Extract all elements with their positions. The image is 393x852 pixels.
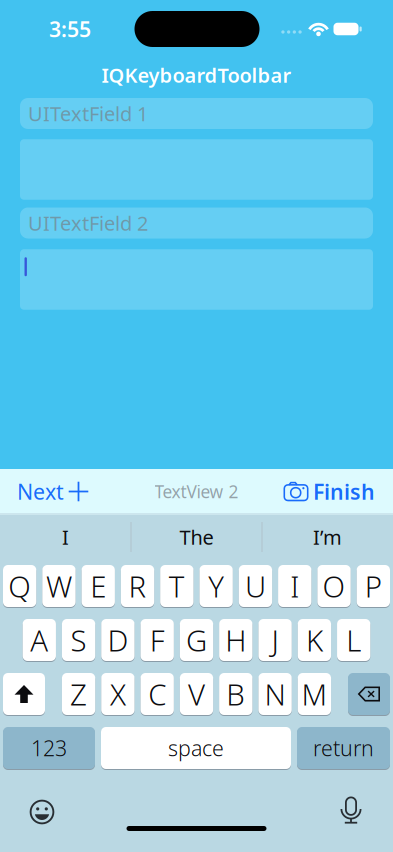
staticText: TextView 2 — [154, 480, 238, 503]
button[interactable]: 123 — [3, 726, 95, 769]
staticText: E — [90, 566, 106, 605]
staticText: S — [71, 620, 87, 659]
staticText: Q — [8, 566, 31, 605]
staticText: UITextField 1 — [28, 100, 148, 127]
button[interactable]: H — [219, 618, 252, 661]
button[interactable]: N — [258, 672, 292, 715]
staticText: Z — [70, 674, 87, 713]
button[interactable]: T — [160, 564, 193, 607]
button[interactable]: Add — [68, 481, 88, 501]
staticText: V — [188, 674, 205, 713]
staticText: F — [150, 620, 165, 659]
button[interactable]: R — [121, 564, 154, 607]
button[interactable]: Finish — [313, 477, 375, 506]
staticText: I — [62, 524, 69, 550]
staticText: 123 — [31, 734, 67, 762]
button[interactable]: K — [298, 618, 331, 661]
staticText: Y — [208, 566, 224, 605]
staticText: IQKeyboardToolbar — [101, 62, 291, 88]
staticText: D — [107, 620, 128, 659]
staticText: M — [301, 674, 327, 713]
staticText: P — [365, 566, 382, 605]
staticText: G — [186, 620, 207, 659]
button[interactable]: Y — [199, 564, 233, 607]
button[interactable]: X — [101, 672, 134, 715]
button[interactable]: UITextField 2 — [20, 207, 373, 238]
staticText: A — [30, 620, 48, 659]
staticText: 3:55 — [49, 15, 91, 43]
button[interactable]: return — [297, 726, 390, 769]
button[interactable]: C — [140, 672, 174, 715]
button[interactable]: D — [101, 618, 134, 661]
button[interactable]: L — [337, 618, 370, 661]
button[interactable]: Shift — [3, 672, 45, 715]
button[interactable]: Camera — [283, 482, 308, 501]
staticText: W — [46, 566, 72, 605]
button[interactable]: space — [101, 726, 291, 769]
button[interactable]: Q — [3, 564, 36, 607]
staticText: return — [313, 734, 374, 762]
button[interactable]: Z — [62, 672, 95, 715]
staticText: X — [110, 674, 126, 713]
staticText: I’m — [313, 524, 342, 550]
staticText: H — [225, 620, 246, 659]
staticText: Finish — [313, 477, 375, 506]
button[interactable]: V — [180, 672, 213, 715]
staticText: UITextField 2 — [28, 210, 148, 236]
button[interactable]: UITextField 1 — [20, 98, 373, 129]
staticText: U — [245, 566, 266, 605]
staticText: I — [290, 566, 299, 605]
staticText: N — [265, 674, 286, 713]
staticText: R — [128, 566, 146, 605]
staticText: T — [169, 566, 185, 605]
button[interactable]: J — [258, 618, 292, 661]
staticText: C — [148, 674, 166, 713]
button[interactable]: A — [23, 618, 56, 661]
button[interactable]: G — [180, 618, 213, 661]
staticText: Next — [17, 477, 64, 506]
button[interactable]: M — [298, 672, 331, 715]
button[interactable]: I’m — [313, 524, 342, 550]
button[interactable]: S — [62, 618, 95, 661]
button[interactable]: Next — [17, 477, 64, 506]
staticText: space — [168, 734, 224, 762]
staticText: The — [179, 524, 213, 550]
button[interactable]: F — [140, 618, 174, 661]
button[interactable]: I — [278, 564, 311, 607]
button[interactable]: P — [357, 564, 390, 607]
button[interactable]: I — [62, 524, 69, 550]
staticText: K — [306, 620, 323, 659]
staticText: L — [346, 620, 361, 659]
staticText: J — [272, 620, 279, 659]
button[interactable]: Text View 2 — [20, 249, 373, 310]
button[interactable]: U — [239, 564, 272, 607]
button[interactable]: O — [317, 564, 351, 607]
button[interactable]: W — [42, 564, 76, 607]
button[interactable]: Emoji — [29, 799, 54, 824]
button[interactable]: B — [219, 672, 252, 715]
button[interactable]: Delete — [348, 672, 390, 715]
staticText: B — [226, 674, 245, 713]
button[interactable]: The — [179, 524, 213, 550]
staticText: O — [322, 566, 345, 605]
button[interactable]: E — [82, 564, 115, 607]
button[interactable]: Dictation — [338, 796, 363, 823]
